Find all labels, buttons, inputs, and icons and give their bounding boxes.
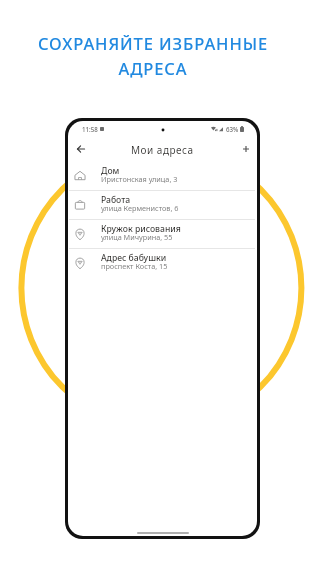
staticText: Работа <box>101 194 131 206</box>
staticText: 63% <box>226 125 239 133</box>
staticText: проспект Коста, 15 <box>101 261 168 271</box>
staticText: улица Мичурина, 55 <box>101 232 173 242</box>
button[interactable]: Работа <box>68 191 257 219</box>
button[interactable]: Адрес бабушки <box>68 249 257 277</box>
staticText: Адрес бабушки <box>101 252 167 264</box>
button[interactable]: Дом <box>68 162 257 190</box>
staticText: Кружок рисования <box>101 223 181 235</box>
button[interactable]: Назад <box>72 140 89 157</box>
staticText: СОХРАНЯЙТЕ ИЗБРАННЫЕ АДРЕСА <box>0 32 315 79</box>
staticText: Дом <box>101 165 120 177</box>
button[interactable]: Добавить адрес <box>237 140 254 157</box>
button[interactable]: Кружок рисования <box>68 220 257 248</box>
staticText: Иристонская улица, 3 <box>101 174 178 184</box>
staticText: 11:58 <box>82 125 98 133</box>
staticText: улица Керменистов, 6 <box>101 203 179 213</box>
staticText: Мои адреса <box>131 143 194 157</box>
